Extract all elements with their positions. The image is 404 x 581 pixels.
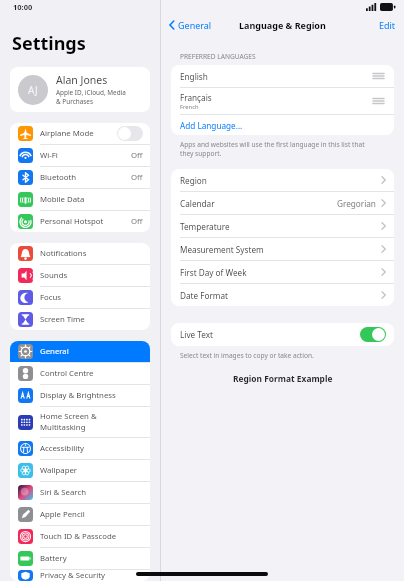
button[interactable]: Touch ID & Passcode (10, 526, 150, 547)
button[interactable]: Date Format (171, 284, 394, 306)
button[interactable]: Home Screen & (10, 407, 150, 437)
staticText: Apple ID, iCloud, Media (56, 88, 126, 97)
button[interactable]: Display & Brightness (10, 385, 150, 406)
staticText: AJ (28, 83, 38, 97)
button[interactable]: Reorder (370, 70, 387, 82)
staticText: Privacy & Security (40, 570, 143, 581)
staticText: Alan Jones (56, 73, 108, 87)
button[interactable]: Edit (371, 15, 404, 35)
staticText: Wallpaper (40, 465, 143, 476)
staticText: Français (180, 92, 212, 103)
staticText: General (40, 346, 143, 357)
button[interactable]: Battery (10, 548, 150, 569)
button[interactable]: General (10, 341, 150, 362)
button[interactable]: Live Text (171, 323, 394, 346)
staticText: Touch ID & Passcode (40, 531, 143, 542)
button[interactable]: Siri & Search (10, 482, 150, 503)
staticText: Live Text (180, 329, 360, 340)
staticText: Wi-Fi (40, 150, 131, 161)
staticText: Region (180, 175, 381, 186)
staticText: Measurement System (180, 244, 381, 255)
button[interactable]: Accessibility (10, 438, 150, 459)
staticText: General (178, 19, 212, 31)
button[interactable]: Add Language... (171, 115, 394, 135)
button[interactable]: English (171, 65, 394, 87)
staticText: Screen Time (40, 314, 143, 325)
button[interactable]: Mobile Data (10, 189, 150, 210)
staticText: Focus (40, 292, 143, 303)
staticText: PREFERRED LANGUAGES (180, 52, 256, 61)
staticText: Siri & Search (40, 487, 143, 498)
staticText: Language & Region (239, 19, 326, 31)
staticText: Off (131, 150, 143, 161)
button[interactable]: Français (171, 88, 394, 114)
staticText: Apps and websites will use the first lan… (180, 140, 365, 149)
staticText: Settings (12, 31, 86, 56)
staticText: Notifications (40, 248, 143, 259)
staticText: Edit (379, 19, 396, 31)
button[interactable]: Apple Pencil (10, 504, 150, 525)
button[interactable]: AJ (10, 67, 150, 112)
button[interactable]: First Day of Week (171, 261, 394, 283)
button[interactable]: Personal Hotspot (10, 211, 150, 232)
staticText: Personal Hotspot (40, 216, 131, 227)
button[interactable]: Privacy & Security (10, 570, 150, 581)
staticText: & Purchases (56, 97, 93, 106)
staticText: Date Format (180, 290, 381, 301)
staticText: Accessibility (40, 443, 143, 454)
button[interactable]: Off (117, 126, 143, 141)
button[interactable]: Measurement System (171, 238, 394, 260)
button[interactable]: Reorder (370, 95, 387, 107)
staticText: Gregorian (337, 198, 376, 209)
staticText: English (180, 71, 370, 82)
staticText: 10:00 (13, 2, 33, 12)
button[interactable]: Calendar (171, 192, 394, 214)
button[interactable]: Bluetooth (10, 167, 150, 188)
staticText: Temperature (180, 221, 381, 232)
staticText: Control Centre (40, 368, 143, 379)
button[interactable]: On (360, 327, 386, 342)
staticText: Multitasking (40, 422, 86, 433)
staticText: Mobile Data (40, 194, 143, 205)
staticText: Airplane Mode (40, 128, 117, 139)
staticText: Apple Pencil (40, 509, 143, 520)
staticText: Battery (40, 553, 143, 564)
staticText: First Day of Week (180, 267, 381, 278)
button[interactable]: General (161, 16, 217, 34)
staticText: Sounds (40, 270, 143, 281)
staticText: Add Language... (180, 120, 243, 131)
staticText: Select text in images to copy or take ac… (180, 351, 314, 360)
button[interactable]: Control Centre (10, 363, 150, 384)
button[interactable]: Screen Time (10, 309, 150, 330)
button[interactable]: Sounds (10, 265, 150, 286)
staticText: Off (131, 172, 143, 183)
staticText: Home Screen & (40, 411, 97, 422)
button[interactable]: Notifications (10, 243, 150, 264)
staticText: Region Format Example (233, 373, 333, 384)
staticText: Bluetooth (40, 172, 131, 183)
button[interactable]: Region (171, 169, 394, 191)
staticText: Off (131, 216, 143, 227)
button[interactable]: Wallpaper (10, 460, 150, 481)
button[interactable]: Wi-Fi (10, 145, 150, 166)
staticText: Calendar (180, 198, 337, 209)
staticText: they support. (180, 149, 222, 158)
staticText: French (180, 103, 199, 111)
button[interactable]: Airplane Mode (10, 123, 150, 144)
button[interactable]: Focus (10, 287, 150, 308)
staticText: Display & Brightness (40, 390, 143, 401)
button[interactable]: Temperature (171, 215, 394, 237)
